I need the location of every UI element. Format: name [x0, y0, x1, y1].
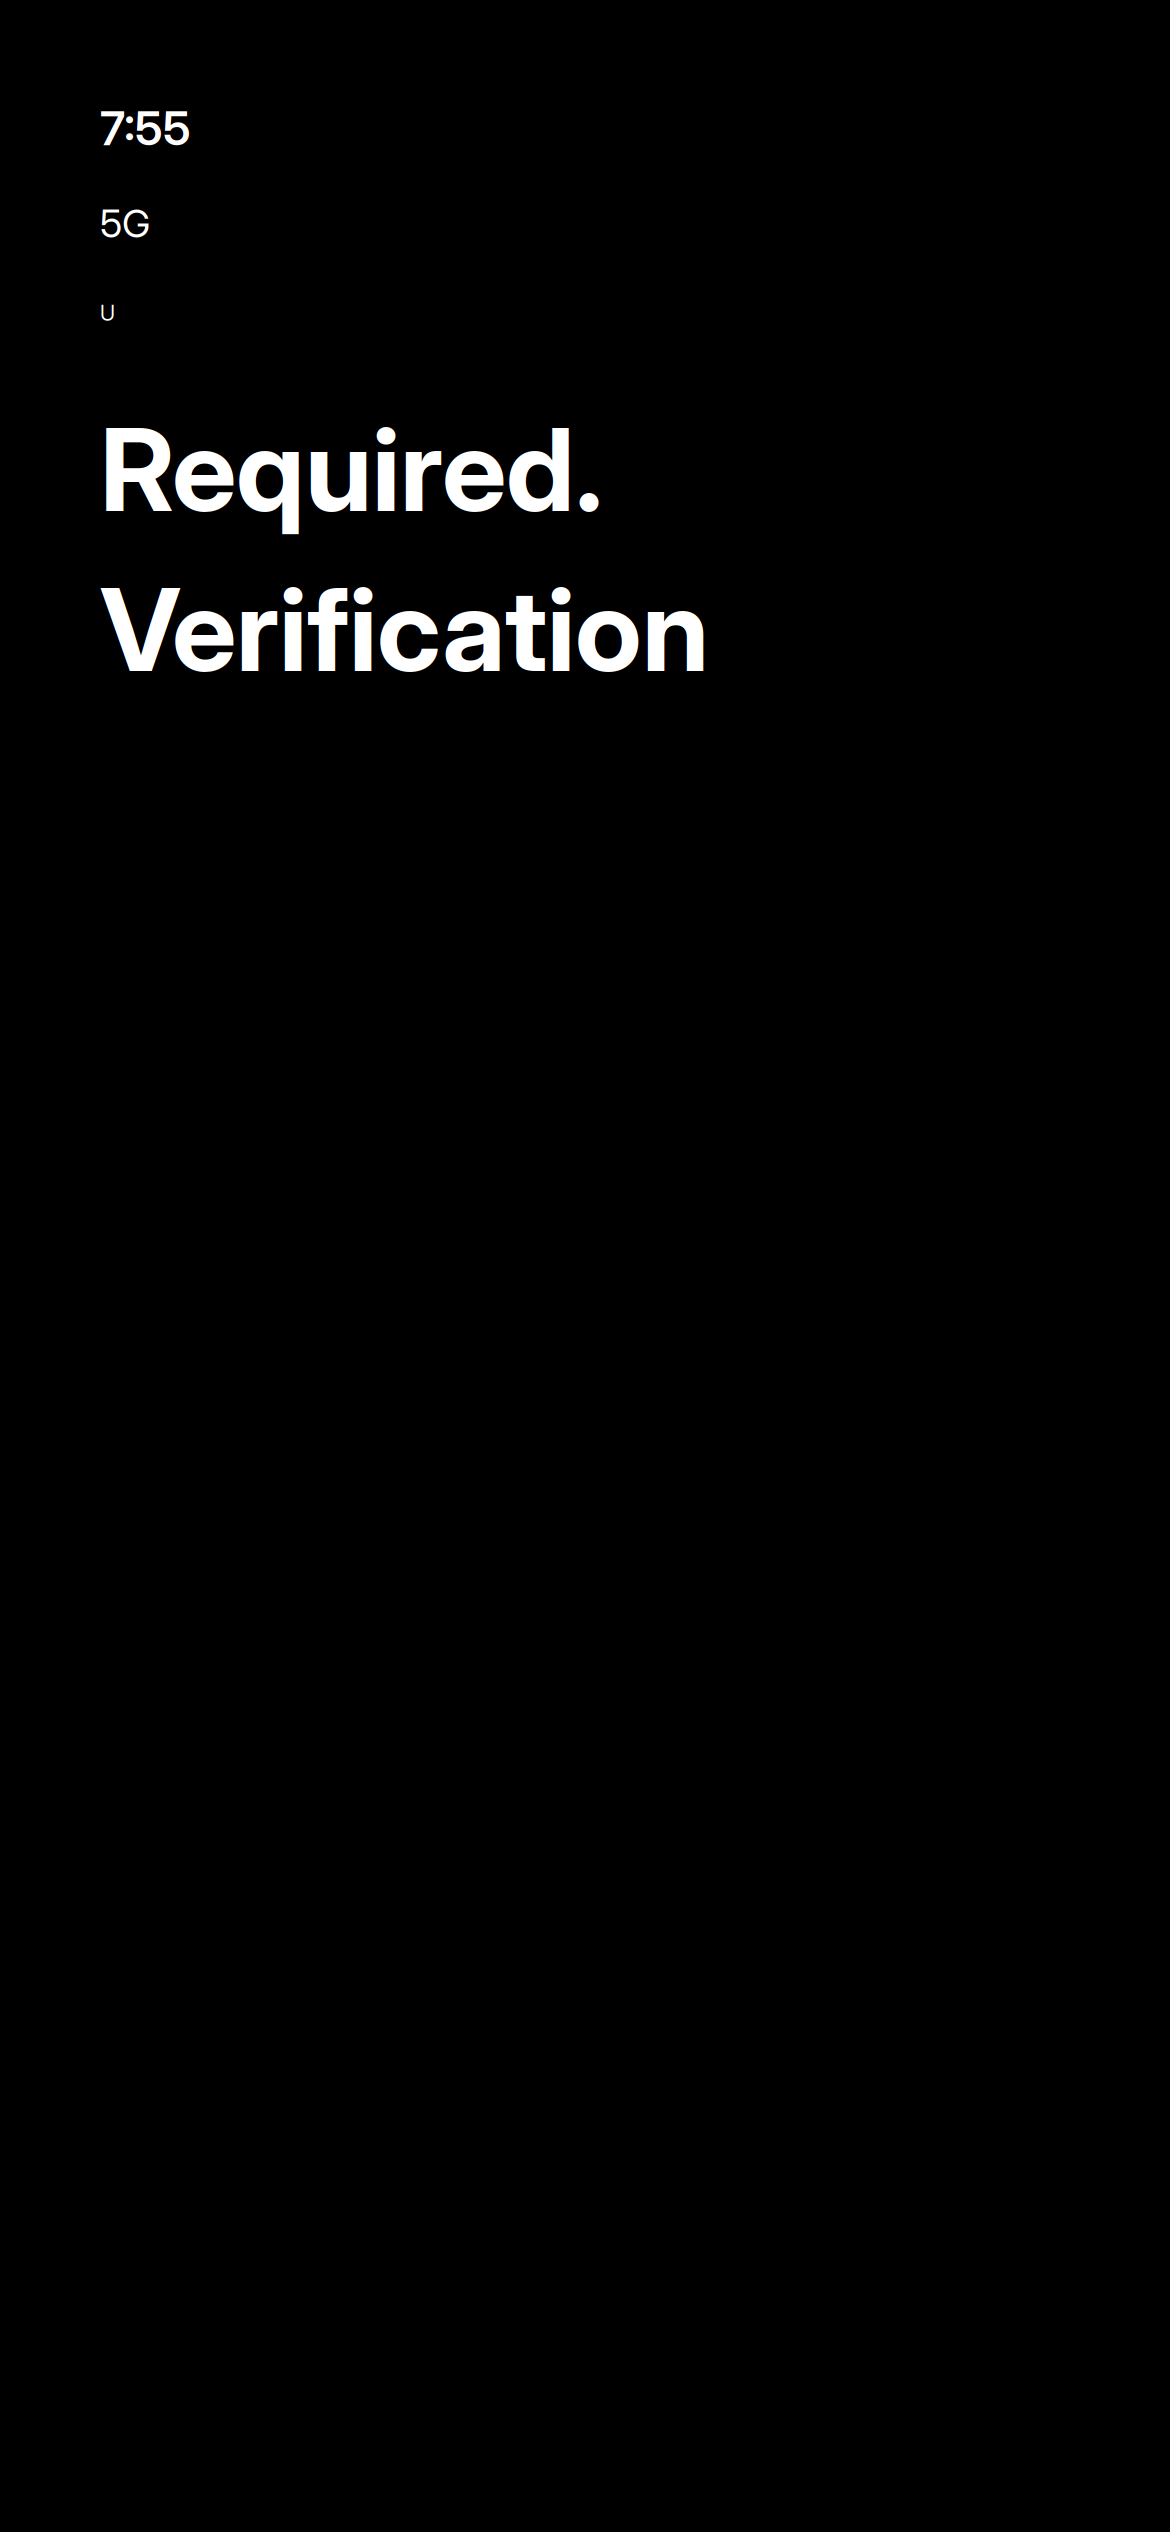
staticText: Required.	[100, 400, 603, 539]
staticText: Verification	[100, 560, 709, 699]
staticText: 5G	[100, 200, 150, 247]
staticText: 7:55	[100, 100, 191, 156]
staticText: U	[100, 300, 115, 326]
